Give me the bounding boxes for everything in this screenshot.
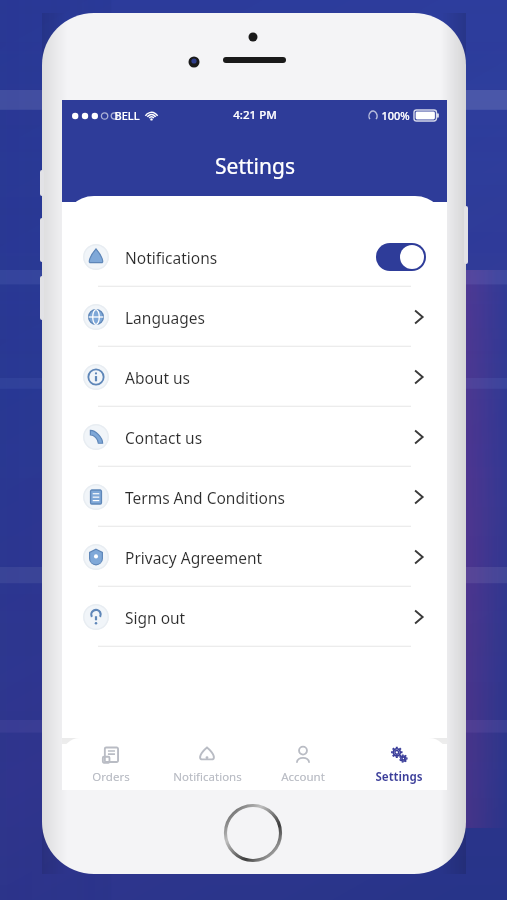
staticText: Orders bbox=[92, 769, 130, 785]
staticText: Privacy Agreement bbox=[125, 547, 412, 568]
staticText: Sign out bbox=[125, 607, 412, 628]
button[interactable]: Terms And Conditions bbox=[62, 467, 447, 527]
button[interactable]: Notifications bbox=[62, 227, 447, 287]
button[interactable]: Orders bbox=[62, 738, 159, 790]
button[interactable]: Languages bbox=[62, 287, 447, 347]
button[interactable]: Notifications toggle, on bbox=[376, 243, 426, 271]
staticText: BELL bbox=[114, 108, 140, 123]
staticText: Settings bbox=[215, 152, 295, 181]
staticText: Settings bbox=[375, 769, 423, 785]
button[interactable]: About us bbox=[62, 347, 447, 407]
staticText: Terms And Conditions bbox=[125, 487, 412, 508]
staticText: 100% bbox=[381, 108, 410, 123]
button[interactable]: Notifications bbox=[159, 738, 255, 790]
staticText: Contact us bbox=[125, 427, 412, 448]
staticText: 4:21 PM bbox=[233, 107, 277, 123]
button[interactable]: Settings bbox=[351, 738, 447, 790]
button[interactable]: Account bbox=[255, 738, 351, 790]
staticText: Account bbox=[281, 769, 325, 785]
button[interactable]: Sign out bbox=[62, 587, 447, 647]
staticText: Languages bbox=[125, 307, 412, 328]
staticText: Notifications bbox=[173, 769, 242, 785]
button[interactable]: Contact us bbox=[62, 407, 447, 467]
button[interactable]: Privacy Agreement bbox=[62, 527, 447, 587]
staticText: Notifications bbox=[125, 247, 376, 268]
staticText: About us bbox=[125, 367, 412, 388]
